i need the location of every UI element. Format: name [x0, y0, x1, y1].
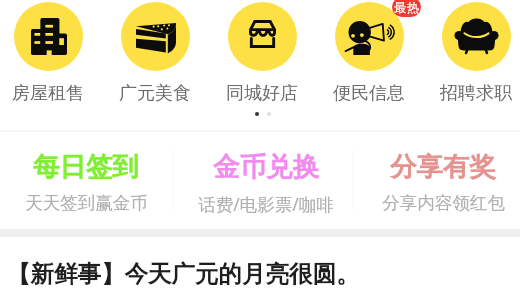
- staticText: 房屋租售: [12, 82, 84, 105]
- staticText: 每日签到: [33, 150, 139, 183]
- button[interactable]: 同城好店: [210, 0, 314, 105]
- button[interactable]: 金币兑换: [178, 150, 354, 216]
- button[interactable]: 每日签到: [0, 150, 174, 214]
- button[interactable]: 房屋租售: [0, 0, 100, 105]
- button[interactable]: 最热: [317, 0, 421, 105]
- staticText: 分享内容领红包: [382, 192, 505, 214]
- button[interactable]: 招聘求职: [424, 0, 520, 105]
- button[interactable]: 【新鲜事】今天广元的月亮很圆。: [0, 237, 520, 289]
- staticText: 便民信息: [333, 82, 405, 105]
- staticText: 最热: [394, 0, 419, 16]
- staticText: 金币兑换: [213, 150, 319, 183]
- button[interactable]: 分享有奖: [355, 150, 520, 214]
- button[interactable]: 广元美食: [103, 0, 207, 105]
- staticText: 【新鲜事】今天广元的月亮很圆。: [7, 259, 360, 289]
- staticText: 分享有奖: [390, 150, 496, 183]
- staticText: 招聘求职: [440, 82, 512, 105]
- staticText: 广元美食: [119, 82, 191, 105]
- staticText: 天天签到赢金币: [25, 192, 148, 214]
- staticText: 话费/电影票/咖啡: [198, 192, 334, 216]
- staticText: 同城好店: [226, 82, 298, 105]
